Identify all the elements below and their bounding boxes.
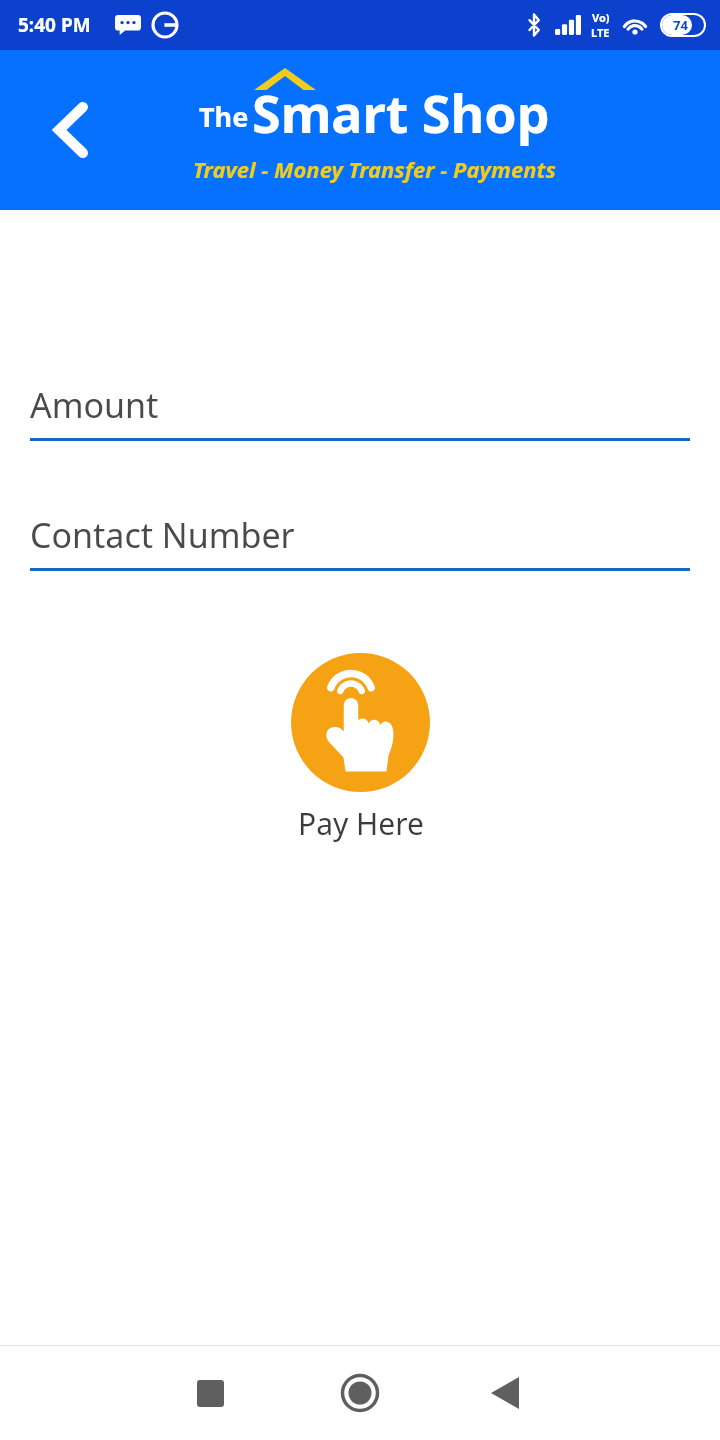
button[interactable]: Amount [30, 382, 690, 441]
staticText: 5:40 PM [18, 12, 91, 38]
staticText: 74 [673, 16, 688, 34]
button[interactable]: Back [465, 1353, 545, 1433]
staticText: LTE [591, 25, 610, 40]
button[interactable]: Recent apps [170, 1353, 250, 1433]
button[interactable]: Contact Number [30, 512, 690, 571]
staticText: Pay Here [298, 803, 424, 844]
staticText: Travel - Money Transfer - Payments [193, 154, 556, 184]
button[interactable]: Pay Here [291, 653, 430, 844]
staticText: Amount [30, 382, 159, 428]
button[interactable]: Back [36, 94, 108, 166]
button[interactable]: Home [320, 1353, 400, 1433]
staticText: Contact Number [30, 512, 295, 558]
staticText: Smart Shop [252, 77, 550, 148]
staticText: Vo) [592, 10, 610, 25]
staticText: The [199, 98, 249, 135]
